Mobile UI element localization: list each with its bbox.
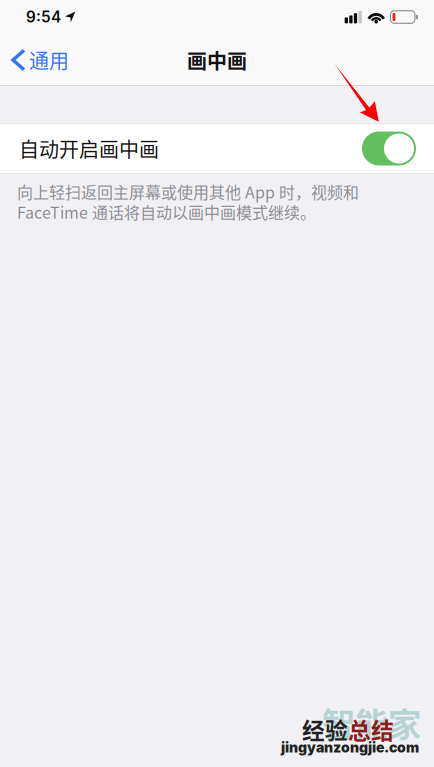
button[interactable]: 自动开启画中画 (362, 131, 416, 165)
staticText: jingyanzongjie.com (281, 739, 419, 756)
staticText: 向上轻扫返回主屏幕或使用其他 App 时，视频和 (17, 180, 359, 203)
staticText: 智能家 (322, 698, 421, 746)
staticText: 经验 (302, 713, 348, 746)
staticText: 9:54 (26, 8, 61, 26)
staticText: 通用 (29, 45, 69, 74)
staticText: 自动开启画中画 (19, 134, 159, 163)
staticText: FaceTime 通话将自动以画中画模式继续。 (17, 200, 316, 223)
button[interactable]: 通用 (0, 35, 79, 85)
staticText: 总结 (348, 713, 394, 746)
staticText: 画中画 (187, 45, 247, 74)
